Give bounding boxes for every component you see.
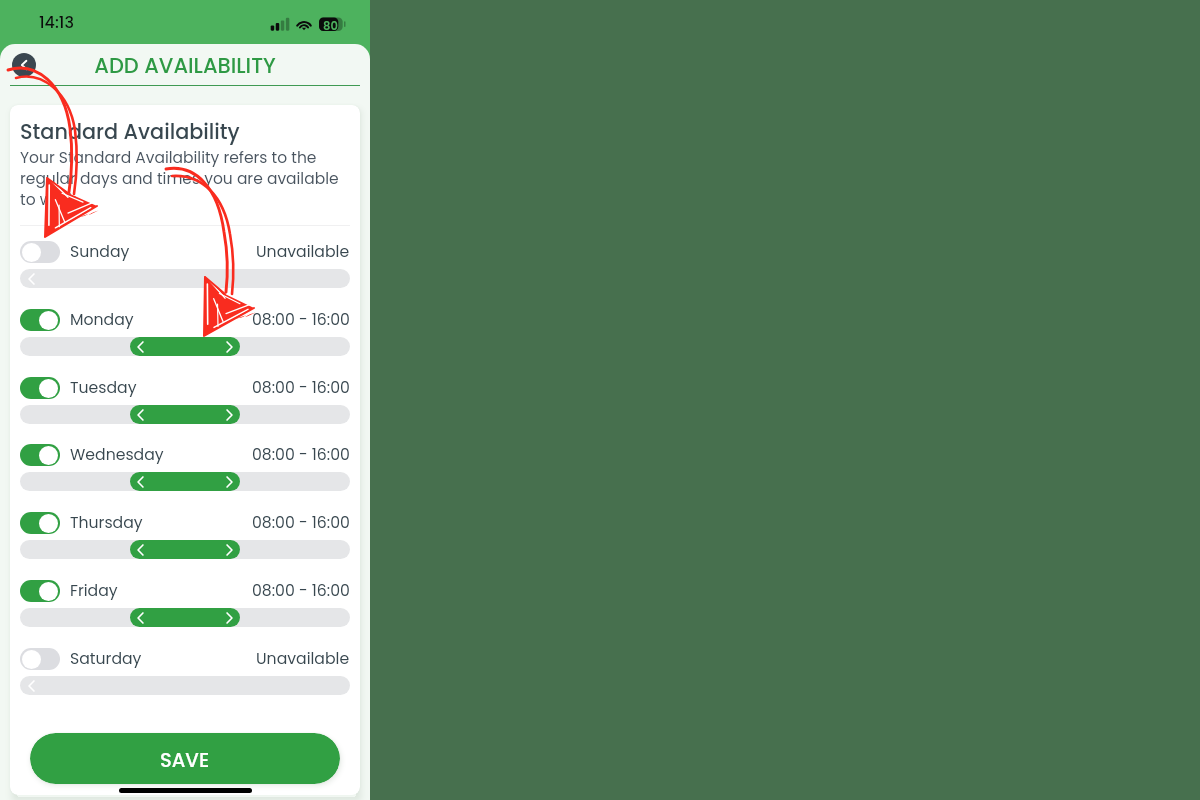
button[interactable]: Toggle Tuesday: [20, 377, 60, 399]
button[interactable]: Toggle Wednesday: [20, 444, 60, 466]
staticText: Monday: [70, 309, 134, 331]
staticText: Your Standard Availability refers to the…: [20, 147, 350, 211]
button[interactable]: Toggle Saturday: [20, 648, 60, 670]
staticText: Saturday: [70, 648, 142, 670]
button[interactable]: [20, 269, 350, 288]
staticText: Tuesday: [70, 377, 137, 399]
staticText: Unavailable: [256, 241, 350, 263]
button[interactable]: [20, 540, 350, 559]
staticText: Wednesday: [70, 444, 164, 466]
staticText: 80: [323, 18, 338, 34]
button[interactable]: [20, 676, 350, 695]
button[interactable]: Toggle Thursday: [20, 512, 60, 534]
button[interactable]: [20, 405, 350, 424]
staticText: Thursday: [70, 512, 143, 534]
staticText: 08:00 - 16:00: [252, 444, 350, 466]
staticText: SAVE: [160, 747, 210, 774]
staticText: Standard Availability: [20, 117, 240, 146]
button[interactable]: [20, 472, 350, 491]
button[interactable]: Toggle Monday: [20, 309, 60, 331]
button[interactable]: Toggle Friday: [20, 580, 60, 602]
button[interactable]: [20, 608, 350, 627]
button[interactable]: Toggle Sunday: [20, 241, 60, 263]
staticText: 08:00 - 16:00: [252, 512, 350, 534]
staticText: 08:00 - 16:00: [252, 309, 350, 331]
staticText: 14:13: [39, 11, 74, 33]
staticText: Friday: [70, 580, 118, 602]
staticText: 08:00 - 16:00: [252, 580, 350, 602]
button[interactable]: SAVE: [30, 733, 340, 784]
staticText: Unavailable: [256, 648, 350, 670]
button[interactable]: Back: [12, 53, 36, 77]
staticText: ADD AVAILABILITY: [94, 51, 276, 80]
staticText: Sunday: [70, 241, 130, 263]
staticText: 08:00 - 16:00: [252, 377, 350, 399]
button[interactable]: [20, 337, 350, 356]
